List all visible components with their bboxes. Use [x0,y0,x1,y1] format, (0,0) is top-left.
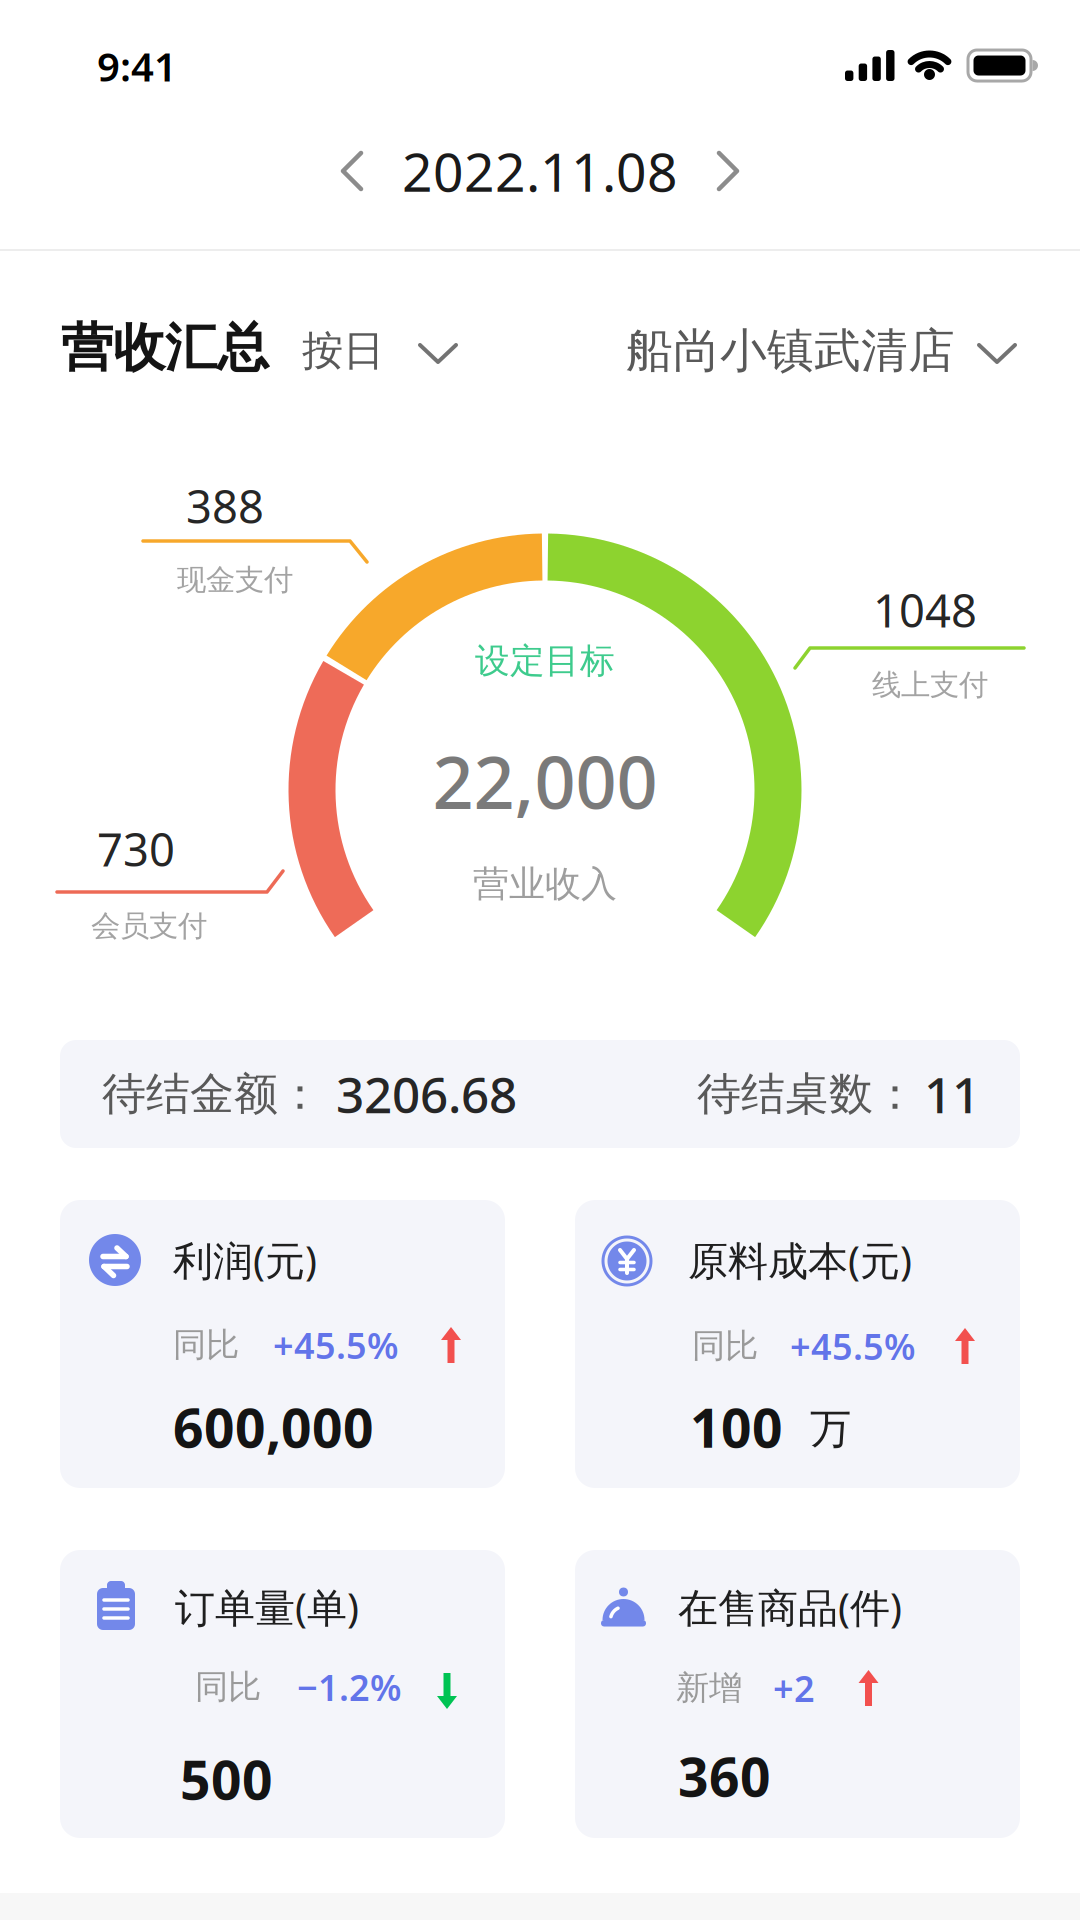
button[interactable] [692,135,764,207]
button[interactable]: 按日 [301,319,461,383]
staticText: 会员支付 [91,908,207,944]
staticText: +45.5% [273,1321,399,1369]
staticText: +2 [773,1664,815,1712]
staticText: 1048 [873,580,977,640]
button[interactable]: 利润(元) [60,1200,505,1488]
staticText: 100 [690,1392,783,1462]
staticText: 600,000 [173,1392,374,1462]
staticText: 同比 [195,1666,261,1707]
button[interactable] [316,135,388,207]
staticText: 原料成本(元) [688,1233,912,1286]
staticText: 按日 [302,326,384,376]
button[interactable]: 待结金额： [60,1040,1020,1148]
button[interactable]: 船尚小镇武清店 [626,319,1022,383]
staticText: 730 [97,819,175,879]
button[interactable]: 订单量(单) [60,1550,505,1838]
staticText: 同比 [692,1325,758,1366]
staticText: 500 [180,1744,273,1814]
button[interactable]: 原料成本(元) [575,1200,1020,1488]
staticText: 360 [678,1741,771,1811]
staticText: 订单量(单) [175,1580,359,1633]
staticText: 待结金额： [102,1067,322,1121]
staticText: 新增 [676,1667,742,1708]
staticText: 11 [924,1061,980,1127]
staticText: 现金支付 [177,562,293,598]
staticText: −1.2% [297,1663,402,1711]
staticText: +45.5% [790,1322,916,1370]
staticText: 3206.68 [336,1061,517,1127]
staticText: 船尚小镇武清店 [626,322,955,380]
staticText: 同比 [173,1324,239,1365]
staticText: 利润(元) [173,1233,317,1286]
staticText: 9:41 [97,39,177,92]
staticText: 在售商品(件) [678,1580,902,1633]
staticText: 营收汇总 [61,316,269,380]
staticText: 2022.11.08 [402,136,678,206]
staticText: 营业收入 [473,862,617,906]
staticText: 22,000 [432,733,657,829]
staticText: 万 [810,1404,851,1454]
staticText: 待结桌数： [697,1067,917,1121]
staticText: 388 [186,476,264,536]
button[interactable]: 在售商品(件) [575,1550,1020,1838]
staticText: 线上支付 [872,667,988,703]
staticText: 设定目标 [475,640,615,682]
